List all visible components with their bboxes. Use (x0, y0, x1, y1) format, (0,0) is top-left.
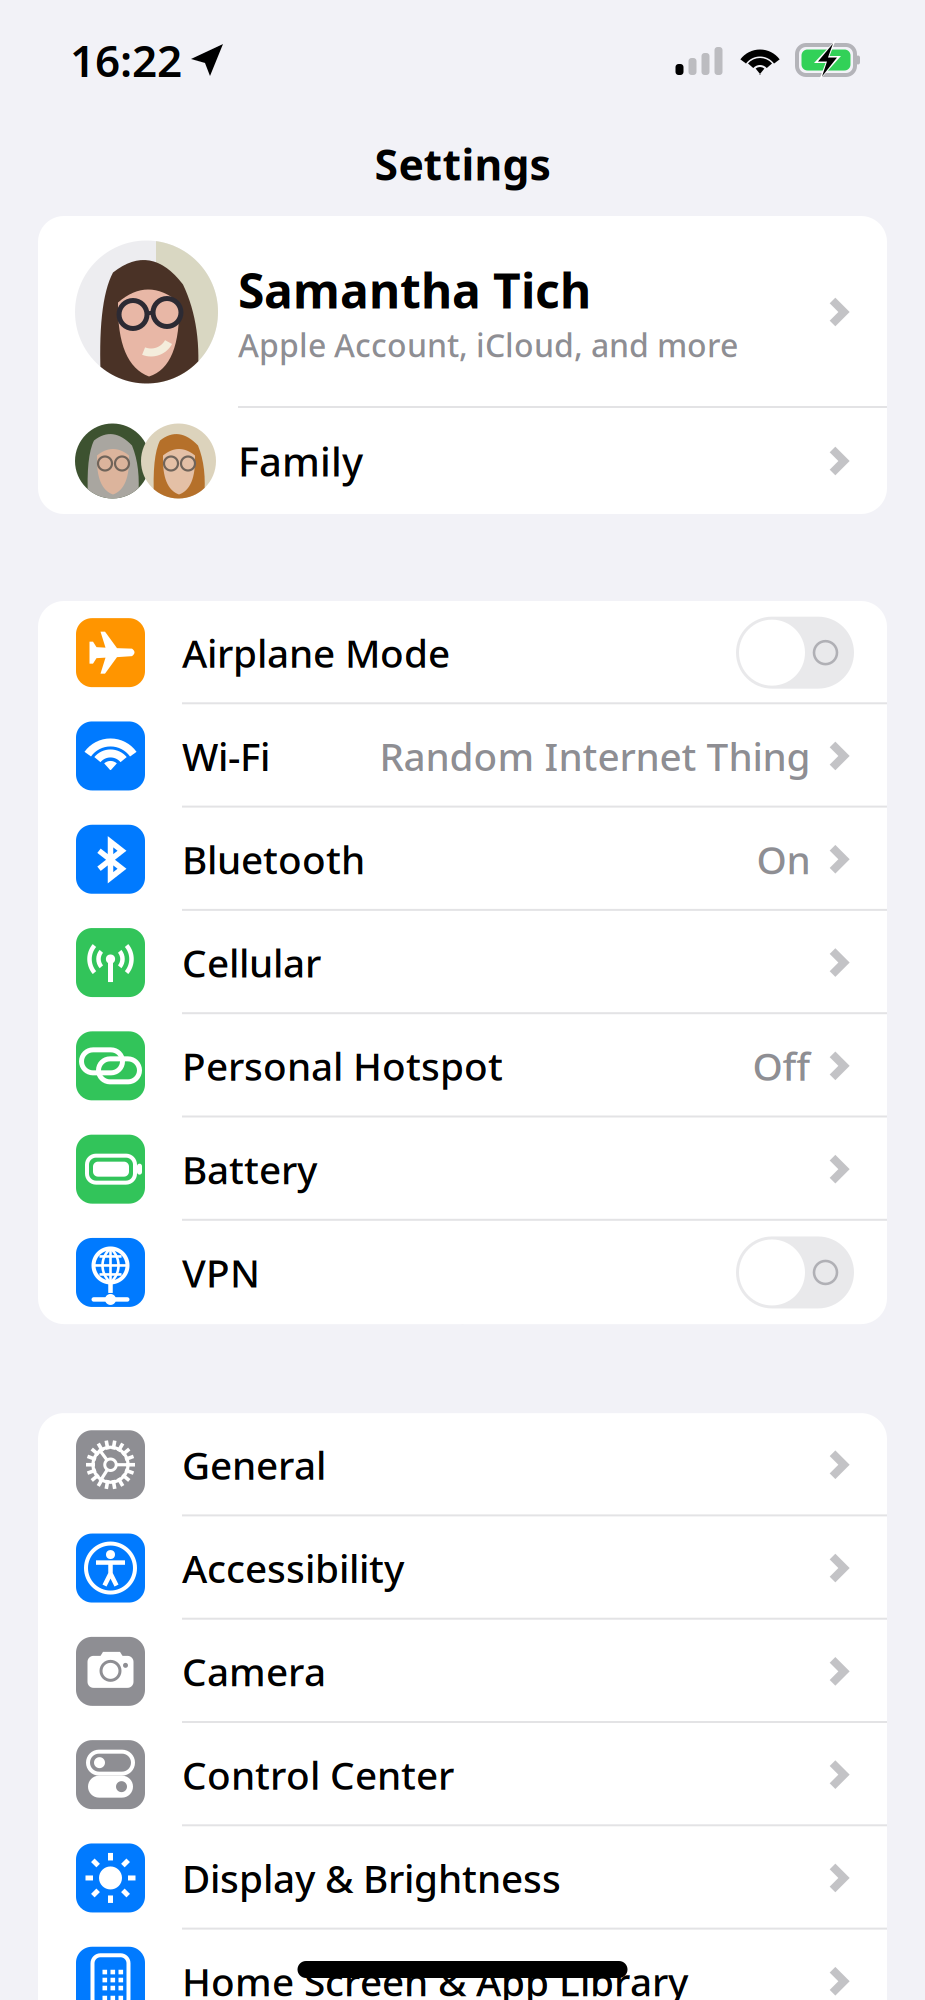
staticText: Off (752, 1040, 810, 1091)
button[interactable]: Samantha Tich (38, 216, 887, 408)
button[interactable]: Family (38, 408, 887, 514)
button[interactable]: VPN (38, 1221, 887, 1324)
staticText: Settings (374, 136, 550, 192)
button[interactable]: Cellular (38, 911, 887, 1014)
staticText: Accessibility (182, 1542, 404, 1594)
button[interactable]: Display & Brightness (38, 1826, 887, 1930)
staticText: Personal Hotspot (182, 1040, 503, 1091)
button[interactable]: Camera (38, 1620, 887, 1723)
button[interactable]: Accessibility (38, 1516, 887, 1620)
staticText: Samantha Tich (238, 258, 591, 322)
staticText: Random Internet Thing (379, 730, 810, 782)
staticText: Home Screen & App Library (182, 1956, 688, 2000)
staticText: 16:22 (70, 31, 182, 89)
staticText: Display & Brightness (182, 1852, 561, 1904)
button[interactable]: Personal Hotspot (38, 1014, 887, 1117)
staticText: VPN (182, 1247, 260, 1298)
staticText: On (756, 834, 810, 885)
button[interactable]: Bluetooth (38, 808, 887, 911)
staticText: Airplane Mode (182, 627, 450, 678)
staticText: General (182, 1439, 326, 1490)
staticText: Wi-Fi (182, 730, 270, 782)
staticText: Apple Account, iCloud, and more (238, 324, 738, 366)
button[interactable]: Home Screen & App Library (38, 1930, 887, 2000)
staticText: Family (238, 434, 363, 487)
button[interactable]: Control Center (38, 1723, 887, 1826)
staticText: Control Center (182, 1749, 454, 1800)
button[interactable]: Battery (38, 1117, 887, 1221)
staticText: Camera (182, 1646, 326, 1697)
button[interactable]: Airplane Mode (38, 601, 887, 704)
staticText: Cellular (182, 937, 321, 988)
staticText: Bluetooth (182, 834, 365, 885)
staticText: Battery (182, 1143, 317, 1195)
button[interactable]: General (38, 1413, 887, 1516)
button[interactable]: Wi-Fi (38, 704, 887, 808)
